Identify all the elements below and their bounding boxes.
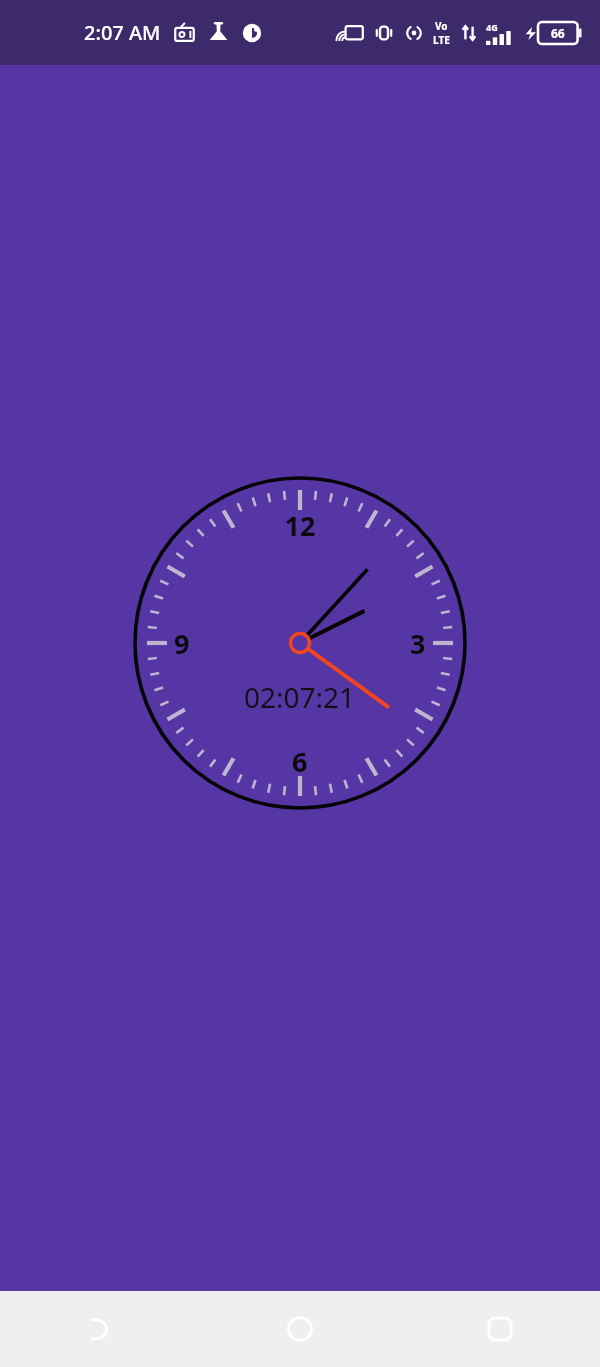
button[interactable]: [0, 65, 600, 1291]
staticText: LTE: [433, 33, 450, 47]
staticText: 2:07 AM: [84, 19, 161, 46]
staticText: 4G: [486, 21, 498, 33]
staticText: 66: [551, 25, 565, 41]
staticText: Vo: [435, 19, 448, 33]
